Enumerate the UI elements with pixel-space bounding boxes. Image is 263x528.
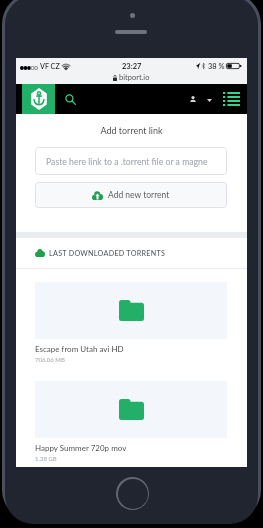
staticText: 23:27	[122, 62, 142, 71]
button[interactable]: LAST DOWNLOADED TORRENTS	[35, 238, 247, 268]
button[interactable]: Account menu	[202, 84, 216, 114]
staticText: Paste here link to a .torrent file or a …	[46, 156, 208, 166]
button[interactable]: Menu	[218, 84, 244, 114]
staticText: 706.06 MB	[35, 356, 65, 363]
button[interactable]: Home	[116, 477, 149, 510]
button[interactable]: Escape from Utah avi HD	[16, 274, 247, 365]
staticText: Add torrent link	[16, 125, 247, 136]
staticText: VF CZ	[40, 62, 60, 71]
staticText: 1.38 GB	[35, 455, 57, 462]
staticText: LAST DOWNLOADED TORRENTS	[49, 249, 166, 258]
button[interactable]: Account	[183, 84, 202, 114]
button[interactable]: Search	[59, 84, 81, 114]
staticText: Happy Summer 720p mov	[35, 443, 127, 453]
button[interactable]: Bitport home	[22, 84, 55, 114]
staticText: Escape from Utah avi HD	[35, 344, 124, 354]
staticText: bitport.io	[119, 73, 150, 82]
staticText: 38 %	[208, 62, 225, 71]
button[interactable]: Address bar	[113, 73, 150, 82]
button[interactable]: Happy Summer 720p mov	[16, 373, 247, 464]
button[interactable]: Paste here link to a .torrent file or a …	[35, 147, 227, 175]
staticText: Add new torrent	[108, 190, 170, 200]
button[interactable]: Add new torrent	[35, 182, 227, 208]
